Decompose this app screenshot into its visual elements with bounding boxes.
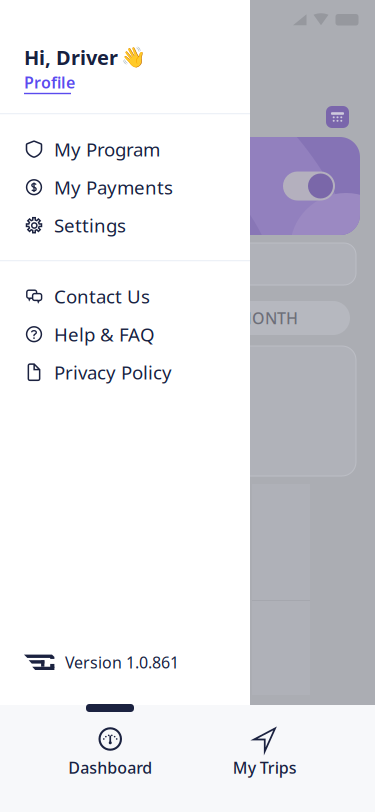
staticText: Dashboard (68, 757, 152, 778)
button[interactable]: Contact Us (0, 277, 250, 315)
button[interactable]: Settings (0, 206, 250, 244)
button[interactable]: Help & FAQ (0, 315, 250, 353)
staticText: Settings (54, 213, 126, 238)
staticText: Contact Us (54, 284, 150, 309)
staticText: Hi, Driver (24, 44, 118, 71)
staticText: DAY (84, 307, 114, 329)
staticText: My Trips (233, 757, 297, 778)
staticText: 👋 (121, 46, 146, 69)
staticText: My Payments (54, 175, 173, 200)
button[interactable]: Dashboard (33, 705, 187, 788)
button[interactable]: My Program (0, 130, 250, 168)
staticText: MONTH (237, 307, 298, 329)
staticText: Help & FAQ (54, 322, 155, 347)
staticText: My Program (54, 137, 160, 162)
staticText: Version 1.0.861 (65, 652, 179, 673)
button[interactable]: Profile (24, 72, 75, 94)
staticText: Privacy Policy (54, 360, 172, 385)
button[interactable]: My Payments (0, 168, 250, 206)
staticText: Profile (24, 72, 75, 93)
button[interactable]: My Trips (187, 705, 342, 788)
button[interactable]: Privacy Policy (0, 353, 250, 391)
